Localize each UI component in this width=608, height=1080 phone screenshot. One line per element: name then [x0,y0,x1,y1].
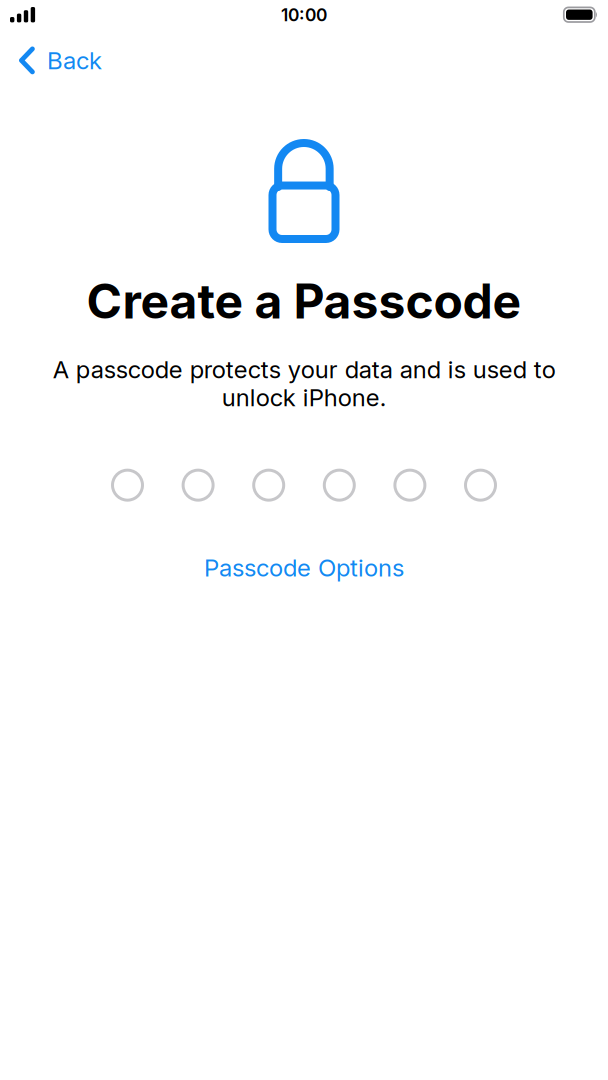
staticText: Passcode Options [204,553,404,582]
staticText: 10:00 [281,4,327,25]
button[interactable]: Passcode Options [190,546,418,589]
staticText: A passcode protects your data and is use… [52,355,555,412]
button[interactable]: Back [0,29,114,85]
staticText: Create a Passcode [86,272,521,330]
staticText: Back [47,46,102,75]
